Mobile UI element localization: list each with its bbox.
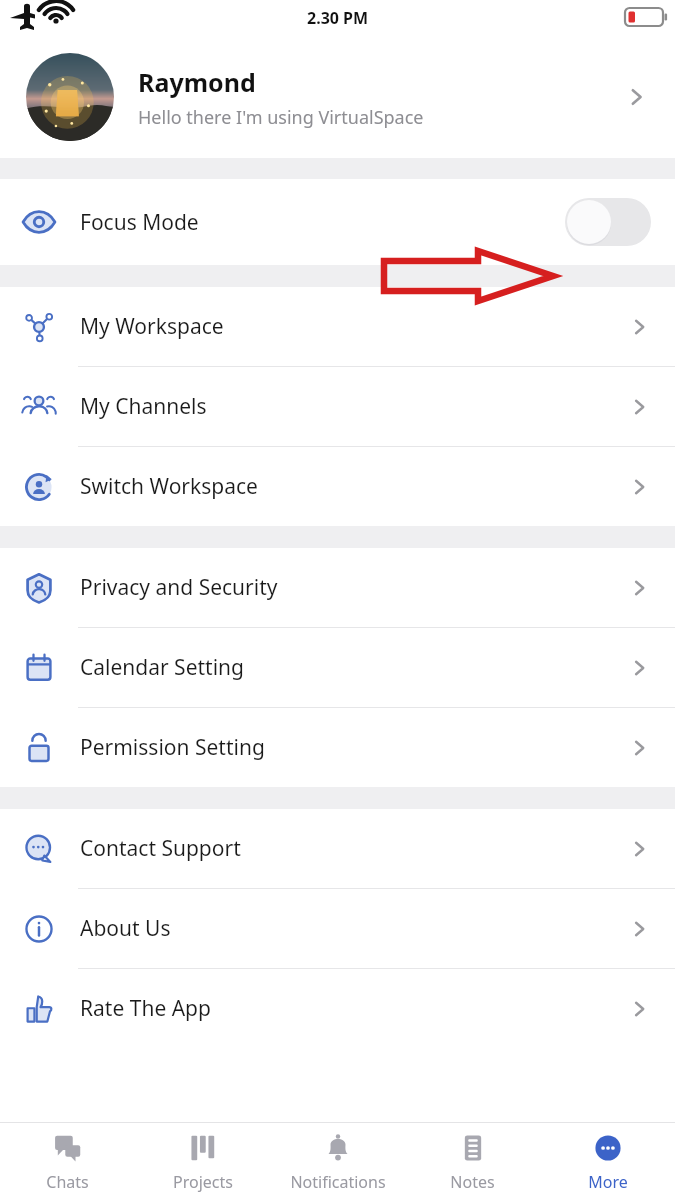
button[interactable]: Projects bbox=[135, 1123, 270, 1200]
staticText: Rate The App bbox=[80, 994, 627, 1023]
button[interactable]: About Us bbox=[0, 889, 675, 968]
staticText: Hello there I'm using VirtualSpace bbox=[138, 105, 424, 130]
staticText: Raymond bbox=[138, 65, 256, 99]
staticText: Calendar Setting bbox=[80, 653, 627, 682]
button[interactable]: Switch Workspace bbox=[0, 447, 675, 526]
button[interactable]: More bbox=[540, 1123, 675, 1200]
staticText: Notifications bbox=[290, 1171, 386, 1193]
button[interactable]: My Channels bbox=[0, 367, 675, 446]
button[interactable]: Calendar Setting bbox=[0, 628, 675, 707]
staticText: Notes bbox=[450, 1171, 495, 1193]
staticText: Switch Workspace bbox=[80, 472, 627, 501]
staticText: Contact Support bbox=[80, 834, 627, 863]
button[interactable]: Notifications bbox=[270, 1123, 405, 1200]
button[interactable]: Focus Mode bbox=[0, 179, 675, 265]
button[interactable]: Focus Mode toggle bbox=[565, 198, 651, 246]
staticText: My Workspace bbox=[80, 312, 627, 341]
staticText: My Channels bbox=[80, 392, 627, 421]
button[interactable]: Permission Setting bbox=[0, 708, 675, 787]
staticText: Projects bbox=[173, 1171, 233, 1193]
button[interactable]: Rate The App bbox=[0, 969, 675, 1048]
staticText: 2.30 PM bbox=[307, 7, 369, 29]
button[interactable]: Raymond bbox=[0, 36, 675, 158]
staticText: Privacy and Security bbox=[80, 573, 627, 602]
button[interactable]: Notes bbox=[405, 1123, 540, 1200]
button[interactable]: Privacy and Security bbox=[0, 548, 675, 627]
staticText: Focus Mode bbox=[80, 208, 565, 237]
button[interactable]: Contact Support bbox=[0, 809, 675, 888]
staticText: Chats bbox=[46, 1171, 89, 1193]
staticText: More bbox=[588, 1171, 628, 1193]
staticText: Permission Setting bbox=[80, 733, 627, 762]
button[interactable]: My Workspace bbox=[0, 287, 675, 366]
staticText: About Us bbox=[80, 914, 627, 943]
button[interactable]: Chats bbox=[0, 1123, 135, 1200]
